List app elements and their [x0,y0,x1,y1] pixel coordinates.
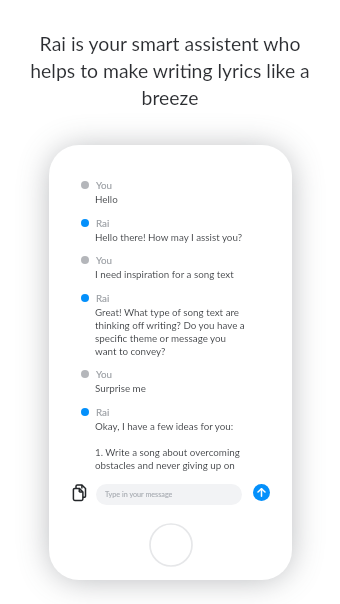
staticText: Hello [95,193,118,205]
staticText: You [96,179,113,191]
button[interactable]: Home [149,523,193,567]
staticText: Rai is your smart assistent who helps to… [0,32,340,109]
staticText: Hello there! How may I assist you? [95,231,243,243]
staticText: I need inspiration for a song text [95,268,234,280]
staticText: Okay, I have a few ideas for you: 1. Wri… [95,420,240,471]
button[interactable]: Send [253,484,270,501]
staticText: Great! What type of song text are thinki… [95,306,245,357]
button[interactable]: Attach file [69,481,91,503]
staticText: You [96,254,113,266]
staticText: Rai [96,217,110,229]
staticText: Rai [96,406,110,418]
staticText: Surprise me [95,382,146,394]
staticText: You [96,368,113,380]
button[interactable]: Type in your message [96,484,242,505]
staticText: Type in your message [105,490,173,499]
staticText: Rai [96,292,110,304]
